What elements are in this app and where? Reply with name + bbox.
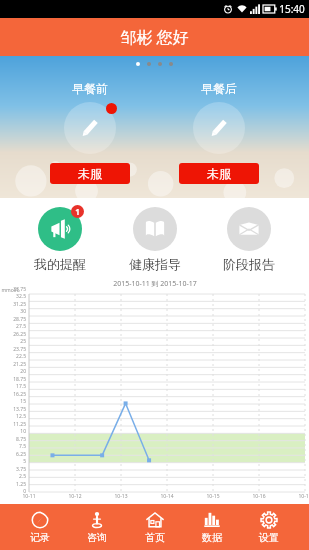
staticText: 未服: [207, 166, 231, 181]
staticText: 18.75: [0, 376, 26, 383]
staticText: 17.5: [0, 383, 26, 390]
button[interactable]: 数据: [195, 508, 229, 547]
staticText: 10-14: [157, 493, 177, 500]
staticText: 25: [0, 338, 26, 345]
button[interactable]: 未服: [50, 163, 130, 184]
staticText: 2015-10-11 到 2015-10-17: [113, 279, 197, 289]
button[interactable]: 咨询: [80, 508, 114, 547]
staticText: 7.5: [0, 443, 26, 450]
staticText: 0: [0, 488, 26, 495]
staticText: 未服: [78, 166, 102, 181]
button[interactable]: 设置: [252, 508, 286, 547]
staticText: 13.75: [0, 406, 26, 413]
staticText: 32.5: [0, 293, 26, 300]
staticText: 27.5: [0, 323, 26, 330]
staticText: 2.5: [0, 473, 26, 480]
staticText: 15:40: [279, 2, 305, 16]
staticText: 12.5: [0, 413, 26, 420]
staticText: 记录: [30, 531, 50, 544]
staticText: 10-12: [65, 493, 85, 500]
button[interactable]: 阶段报告: [215, 203, 283, 274]
staticText: 8.75: [0, 436, 26, 443]
staticText: 11.25: [0, 421, 26, 428]
staticText: 10-11: [19, 493, 39, 500]
staticText: 早餐后: [201, 81, 237, 96]
staticText: 1.25: [0, 481, 26, 488]
staticText: 30: [0, 308, 26, 315]
button[interactable]: 记录 早餐后: [193, 102, 245, 154]
staticText: 数据: [202, 531, 222, 544]
staticText: 5: [0, 458, 26, 465]
staticText: 31.25: [0, 301, 26, 308]
staticText: 10: [0, 428, 26, 435]
staticText: 健康指导: [129, 256, 181, 272]
staticText: 咨询: [87, 531, 107, 544]
button[interactable]: 未服: [179, 163, 259, 184]
staticText: 早餐前: [72, 81, 108, 96]
button[interactable]: 健康指导: [121, 203, 189, 274]
staticText: 10-15: [203, 493, 223, 500]
staticText: 20: [0, 368, 26, 375]
staticText: 33.75: [0, 286, 26, 293]
staticText: 10-16: [249, 493, 269, 500]
staticText: 28.75: [0, 316, 26, 323]
staticText: 1: [75, 206, 80, 217]
staticText: 首页: [145, 531, 165, 544]
staticText: 3.75: [0, 466, 26, 473]
staticText: 26.25: [0, 331, 26, 338]
staticText: mmol/L: [1, 287, 20, 294]
staticText: 阶段报告: [223, 256, 275, 272]
staticText: 邹彬 您好: [120, 26, 189, 48]
staticText: 21.25: [0, 361, 26, 368]
button[interactable]: 记录: [23, 508, 57, 547]
staticText: 15: [0, 398, 26, 405]
staticText: 设置: [259, 531, 279, 544]
staticText: 6.25: [0, 451, 26, 458]
staticText: 10-17: [295, 493, 309, 500]
button[interactable]: 1: [26, 203, 94, 274]
staticText: 23.75: [0, 346, 26, 353]
staticText: 10-13: [111, 493, 131, 500]
button[interactable]: 首页: [138, 508, 172, 547]
staticText: 22.5: [0, 353, 26, 360]
staticText: 我的提醒: [34, 256, 86, 272]
button[interactable]: 记录 早餐前: [64, 102, 116, 154]
staticText: 16.25: [0, 391, 26, 398]
